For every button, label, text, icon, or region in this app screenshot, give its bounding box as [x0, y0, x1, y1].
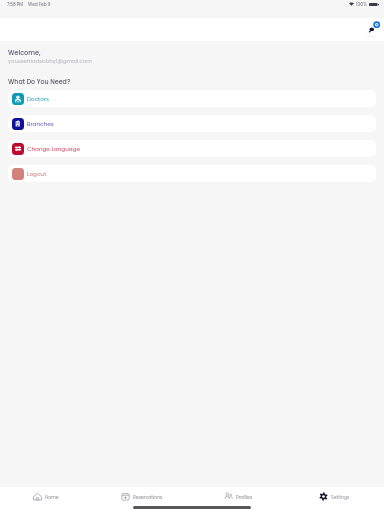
staticText: Logout [27, 170, 47, 178]
staticText: Welcome, [8, 48, 41, 57]
staticText: Wed Feb 9 [28, 1, 51, 7]
staticText: youssefriadsobhy1@gmail.com [8, 57, 92, 65]
button[interactable]: Change Language [8, 140, 376, 157]
button[interactable]: Profiles [190, 487, 286, 506]
staticText: Doctors [27, 95, 49, 103]
staticText: Settings [331, 494, 350, 500]
button[interactable]: Reservations [94, 487, 190, 506]
button[interactable]: Notifications [362, 22, 378, 38]
staticText: Reservations [133, 494, 163, 500]
staticText: Home [45, 494, 59, 500]
button[interactable]: Branches [8, 115, 376, 132]
staticText: Change Language [27, 145, 81, 153]
button[interactable]: Settings [286, 487, 382, 506]
button[interactable]: Home [0, 487, 94, 506]
button[interactable]: Doctors [8, 90, 376, 107]
staticText: 100% [356, 1, 367, 7]
staticText: Profiles [236, 494, 253, 500]
button[interactable]: Logout [8, 165, 376, 182]
staticText: 7:58 PM [7, 1, 24, 7]
staticText: Branches [27, 120, 54, 128]
staticText: What Do You Need? [8, 77, 71, 86]
